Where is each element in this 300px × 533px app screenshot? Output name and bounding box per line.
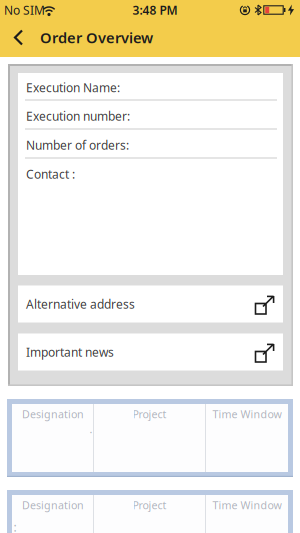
staticText: Project	[132, 498, 166, 512]
staticText: Execution Name:	[26, 79, 120, 95]
staticText: Order Overview	[40, 28, 153, 47]
staticText: Time Window	[212, 498, 281, 512]
staticText: Project	[132, 407, 166, 421]
staticText: No SIM	[4, 2, 45, 18]
staticText: .	[89, 422, 92, 436]
staticText: Time Window	[212, 407, 281, 421]
staticText: Number of orders:	[26, 137, 129, 153]
staticText: Important news	[26, 344, 114, 360]
button[interactable]: Important news	[18, 333, 283, 370]
staticText: :	[13, 519, 16, 533]
staticText: Execution number:	[26, 108, 130, 124]
staticText: Contact :	[26, 166, 75, 182]
button[interactable]: Back	[6, 25, 32, 49]
staticText: Alternative address	[26, 296, 135, 312]
button[interactable]: Alternative address	[18, 285, 283, 322]
staticText: Designation	[22, 407, 84, 421]
staticText: 3:48 PM	[132, 2, 177, 18]
staticText: Designation	[22, 498, 84, 512]
